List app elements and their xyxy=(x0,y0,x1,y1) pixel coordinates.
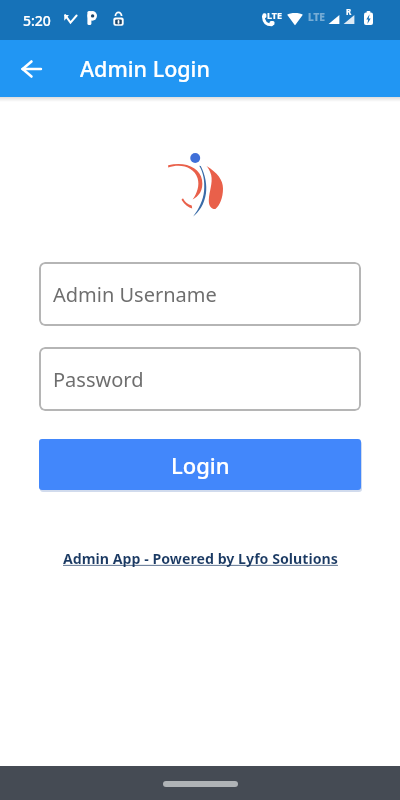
staticText: 5:20 xyxy=(23,11,51,30)
staticText: Password xyxy=(53,366,144,393)
button[interactable]: Password xyxy=(39,347,361,411)
button[interactable]: Admin App - Powered by Lyfo Solutions xyxy=(63,549,338,568)
button[interactable]: Back xyxy=(3,40,60,97)
staticText: Admin Username xyxy=(53,281,217,308)
button[interactable]: Admin Username xyxy=(39,262,361,326)
staticText: Admin Login xyxy=(80,54,210,83)
staticText: LTE xyxy=(308,10,325,24)
staticText: R xyxy=(346,6,352,17)
staticText: Login xyxy=(171,450,230,480)
button[interactable]: Login xyxy=(39,439,361,490)
staticText: LTE xyxy=(267,9,283,21)
